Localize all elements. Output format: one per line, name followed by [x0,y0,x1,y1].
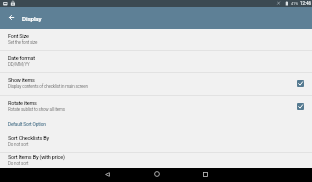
staticText: Font Size [8,33,29,39]
staticText: Do not sort [8,161,29,166]
button[interactable]: Rotate items [0,96,312,118]
button[interactable]: Sort Items By (with price) [0,153,312,168]
staticText: 41% [291,1,298,6]
button[interactable]: Recent apps [181,167,230,181]
staticText: 12:46 [300,1,311,6]
button[interactable]: Show items [0,73,312,95]
button[interactable]: Home [132,167,181,181]
staticText: Do not sort [8,142,29,147]
staticText: Date format [8,55,35,61]
staticText: Rotate sublist to show all items [8,107,65,112]
staticText: Show items [8,77,35,83]
staticText: Sort Items By (with price) [8,154,65,160]
button[interactable]: Back [83,167,132,181]
button[interactable]: Date format [0,51,312,72]
button[interactable]: Rotate items toggle [297,103,304,110]
button[interactable]: Show items toggle [297,80,304,87]
button[interactable]: Sort Checklists By [0,131,312,152]
staticText: Rotate items [8,100,37,106]
staticText: DD/MM/YY [8,62,30,67]
staticText: Set the font size [8,40,38,45]
staticText: Sort Checklists By [8,135,49,141]
staticText: Display contents of checklist in main sc… [8,84,88,89]
staticText: Default Sort Option [8,122,46,128]
staticText: Display [22,15,42,22]
button[interactable]: Navigate up [0,7,22,29]
button[interactable]: Font Size [0,29,312,50]
